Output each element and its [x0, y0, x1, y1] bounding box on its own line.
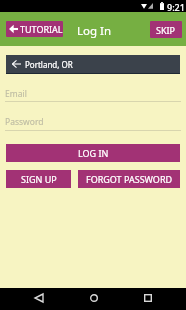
button[interactable]: SKIP	[150, 21, 182, 38]
button[interactable]: Home	[82, 288, 105, 310]
button[interactable]: Portland, OR	[6, 55, 180, 73]
button[interactable]: SIGN UP	[6, 170, 71, 188]
staticText: FORGOT PASSWORD	[86, 173, 173, 185]
staticText: SKIP	[156, 24, 176, 36]
button[interactable]: Recents	[136, 288, 159, 310]
button[interactable]: TUTORIAL	[6, 21, 63, 37]
button[interactable]: Back	[27, 288, 50, 310]
staticText: 9:21	[167, 1, 185, 13]
staticText: LOG IN	[78, 147, 109, 159]
staticText: Log In	[77, 23, 112, 39]
staticText: SIGN UP	[21, 173, 57, 185]
staticText: Portland, OR	[25, 59, 73, 70]
staticText: Email	[5, 88, 27, 100]
staticText: TUTORIAL	[20, 23, 63, 35]
staticText: Password	[5, 116, 44, 128]
button[interactable]: LOG IN	[6, 144, 180, 162]
button[interactable]: FORGOT PASSWORD	[78, 170, 180, 188]
